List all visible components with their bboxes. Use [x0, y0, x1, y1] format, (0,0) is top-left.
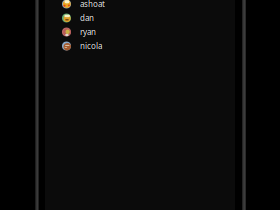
staticText: dan	[80, 13, 94, 23]
button[interactable]: dan	[45, 11, 235, 25]
staticText: ryan	[80, 27, 96, 37]
button[interactable]: ryan	[45, 25, 235, 39]
button[interactable]: nicola	[45, 39, 235, 53]
staticText: nicola	[80, 41, 102, 51]
button[interactable]: ashoat	[45, 0, 235, 11]
staticText: ashoat	[80, 0, 105, 9]
